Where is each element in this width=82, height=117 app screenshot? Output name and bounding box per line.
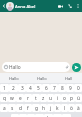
staticText: Hallo xyxy=(9,76,19,81)
button[interactable]: 2 xyxy=(9,84,18,92)
staticText: b xyxy=(47,115,50,117)
staticText: k xyxy=(56,105,59,112)
staticText: Hallo xyxy=(37,76,47,81)
button[interactable]: ö xyxy=(68,104,75,112)
staticText: 8 xyxy=(61,85,64,92)
button[interactable]: Hallo xyxy=(2,62,70,72)
staticText: 7 xyxy=(53,85,56,92)
button[interactable]: 3 xyxy=(18,84,26,92)
button[interactable]: Voice call xyxy=(66,2,74,10)
button[interactable]: o xyxy=(61,94,68,102)
button[interactable]: 6 xyxy=(42,84,50,92)
button[interactable]: i xyxy=(54,94,61,102)
button[interactable]: ä xyxy=(75,104,82,112)
staticText: i xyxy=(57,95,59,102)
button[interactable]: r xyxy=(24,94,32,102)
staticText: s xyxy=(11,105,14,112)
button[interactable]: 5 xyxy=(34,84,42,92)
staticText: d xyxy=(19,105,22,112)
button[interactable]: 8 xyxy=(58,84,66,92)
button[interactable]: e xyxy=(16,94,24,102)
staticText: l xyxy=(64,105,66,112)
button[interactable]: s xyxy=(8,104,16,112)
staticText: p xyxy=(70,95,73,102)
button[interactable]: 1 xyxy=(0,84,9,92)
button[interactable]: ü xyxy=(75,94,82,102)
staticText: Hall xyxy=(65,76,73,81)
staticText: 9 xyxy=(69,85,72,92)
button[interactable]: More options xyxy=(74,2,81,9)
staticText: t xyxy=(35,95,37,102)
staticText: 6 xyxy=(45,85,48,92)
button[interactable]: q xyxy=(0,94,8,102)
staticText: a xyxy=(3,105,6,112)
staticText: ü xyxy=(77,95,80,102)
button[interactable]: 4 xyxy=(26,84,34,92)
button[interactable]: w xyxy=(8,94,16,102)
button[interactable]: k xyxy=(54,104,61,112)
button[interactable]: Hallo xyxy=(0,73,28,83)
staticText: j xyxy=(50,105,52,112)
staticText: 2 xyxy=(12,85,15,92)
staticText: g xyxy=(35,105,38,112)
button[interactable]: z xyxy=(40,94,47,102)
button[interactable]: Video call xyxy=(56,2,64,10)
button[interactable]: d xyxy=(16,104,24,112)
button[interactable]: Send xyxy=(72,63,81,72)
staticText: Anna Abel xyxy=(15,4,36,10)
staticText: w xyxy=(10,95,14,102)
staticText: f xyxy=(27,105,29,112)
other: Attach xyxy=(65,65,69,69)
staticText: 1 xyxy=(3,85,6,92)
staticText: 4 xyxy=(29,85,32,92)
staticText: o xyxy=(63,95,66,102)
staticText: z xyxy=(42,95,45,102)
button[interactable]: a xyxy=(0,104,8,112)
button[interactable]: p xyxy=(68,94,75,102)
button[interactable]: j xyxy=(47,104,54,112)
button[interactable]: g xyxy=(32,104,40,112)
button[interactable]: Profile photo xyxy=(6,2,14,10)
staticText: e xyxy=(19,95,22,102)
button[interactable]: f xyxy=(24,104,32,112)
staticText: ä xyxy=(77,105,80,112)
button[interactable]: h xyxy=(40,104,47,112)
button[interactable]: u xyxy=(47,94,54,102)
button[interactable]: Back xyxy=(0,2,7,9)
staticText: r xyxy=(27,95,29,102)
staticText: Hallo xyxy=(9,64,21,71)
staticText: q xyxy=(3,95,6,102)
button[interactable]: b xyxy=(44,114,53,117)
staticText: 0 xyxy=(77,85,80,92)
staticText: u xyxy=(49,95,52,102)
button[interactable]: Hall xyxy=(55,73,82,83)
button[interactable]: Hallo xyxy=(28,73,55,83)
button[interactable]: l xyxy=(61,104,68,112)
staticText: ö xyxy=(70,105,73,112)
button[interactable]: 0 xyxy=(74,84,82,92)
button[interactable]: 7 xyxy=(50,84,58,92)
button[interactable]: 9 xyxy=(66,84,74,92)
staticText: 5 xyxy=(37,85,40,92)
staticText: 3 xyxy=(21,85,24,92)
staticText: h xyxy=(42,105,45,112)
button[interactable]: t xyxy=(32,94,40,102)
